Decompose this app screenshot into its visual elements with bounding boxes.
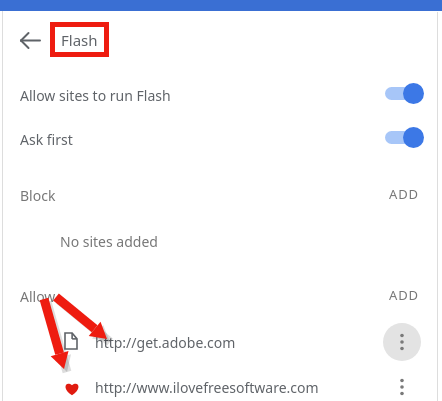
button[interactable]: Flash: [50, 22, 109, 57]
button[interactable]: ADD: [382, 283, 426, 307]
staticText: Allow: [20, 287, 56, 306]
button[interactable]: http://www.ilovefreesoftware.com: [0, 366, 442, 401]
button[interactable]: ADD: [382, 182, 426, 206]
staticText: ADD: [389, 185, 419, 203]
button[interactable]: More options: [383, 323, 421, 361]
staticText: No sites added: [60, 232, 158, 251]
button[interactable]: More options: [383, 368, 421, 401]
staticText: Flash: [61, 30, 98, 50]
staticText: http://get.adobe.com: [95, 333, 236, 352]
staticText: Ask first: [20, 130, 73, 149]
staticText: ADD: [389, 286, 419, 304]
staticText: Allow sites to run Flash: [20, 86, 171, 105]
staticText: Block: [20, 186, 56, 205]
button[interactable]: http://get.adobe.com: [0, 321, 442, 363]
button[interactable]: Back: [14, 24, 46, 56]
button[interactable]: Ask first: [0, 123, 442, 157]
staticText: http://www.ilovefreesoftware.com: [95, 378, 319, 397]
button[interactable]: Allow sites to run Flash: [0, 79, 442, 113]
